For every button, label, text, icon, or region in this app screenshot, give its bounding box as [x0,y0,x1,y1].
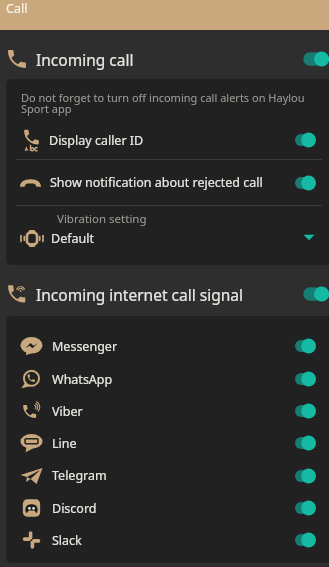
button[interactable]: Toggle [287,397,329,425]
staticText: Call [6,0,28,17]
button[interactable]: Vibration setting [6,206,329,265]
button[interactable]: Toggle [295,277,329,311]
staticText: Line [52,435,287,452]
button[interactable]: Toggle [287,526,329,554]
staticText: Display caller ID [49,132,287,149]
button[interactable]: Messenger [6,329,329,363]
staticText: Show notification about rejected call [50,174,287,191]
staticText: Incoming internet call signal [36,284,295,305]
staticText: Messenger [52,338,287,355]
staticText: WhatsApp [52,371,287,388]
button[interactable]: WhatsApp [6,363,329,395]
button[interactable]: Toggle [287,494,329,522]
button[interactable]: Incoming call [0,42,329,76]
button[interactable]: Toggle [287,169,329,197]
button[interactable]: Toggle [287,429,329,457]
button[interactable]: Telegram [6,459,329,492]
staticText: Default [51,230,298,247]
staticText: Vibration setting [57,211,147,227]
staticText: Incoming call [36,49,295,70]
button[interactable]: Slack [6,524,329,556]
button[interactable]: Viber [6,395,329,427]
staticText: Telegram [52,467,287,484]
staticText: Do not forget to turn off incoming call … [21,90,315,117]
button[interactable]: Toggle [287,365,329,393]
staticText: Viber [52,403,287,420]
button[interactable]: Incoming internet call signal [0,277,329,311]
button[interactable]: Toggle [295,42,329,76]
button[interactable]: Show notification about rejected call [6,160,329,205]
staticText: Discord [52,500,287,517]
button[interactable]: Toggle [287,462,329,490]
button[interactable]: Toggle [287,332,329,360]
button[interactable]: Toggle [287,126,329,154]
button[interactable]: Line [6,427,329,459]
button[interactable]: Discord [6,492,329,524]
staticText: Slack [52,532,287,549]
button[interactable]: Display caller ID [6,121,329,159]
